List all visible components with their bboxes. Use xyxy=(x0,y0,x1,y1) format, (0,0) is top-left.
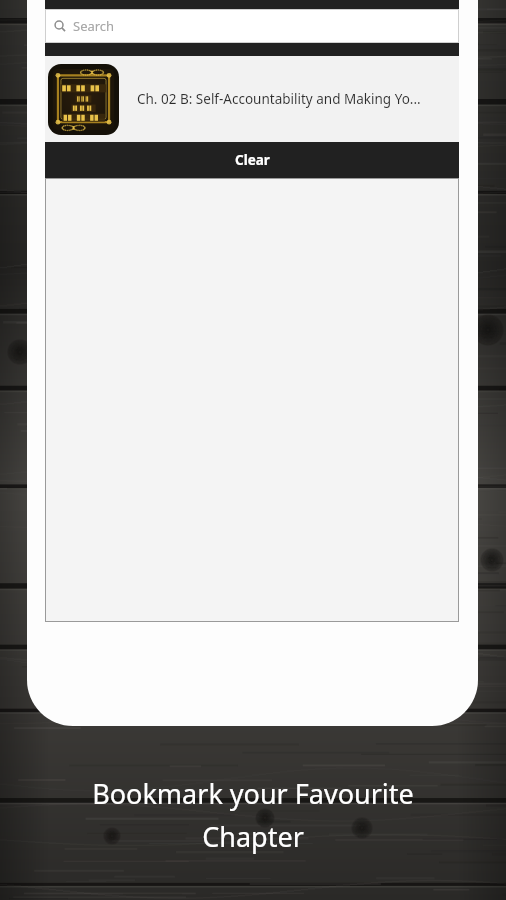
staticText: Clear xyxy=(235,151,270,169)
staticText: Ch. 02 B: Self-Accountability and Making… xyxy=(137,90,421,108)
staticText: Search xyxy=(73,17,115,35)
staticText: Chapter xyxy=(202,818,304,855)
button[interactable]: Clear xyxy=(45,142,459,178)
button[interactable]: Search xyxy=(45,9,459,43)
staticText: Bookmark your Favourite xyxy=(92,775,414,812)
button[interactable]: Ch. 02 B: Self-Accountability and Making… xyxy=(45,56,459,142)
